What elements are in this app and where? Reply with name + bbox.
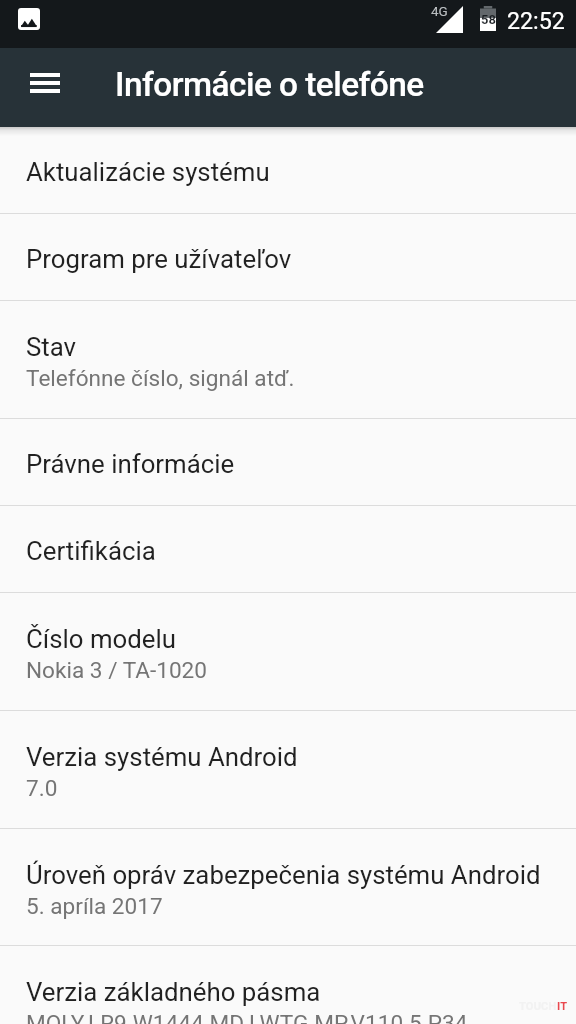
staticText: 7.0 xyxy=(26,775,58,801)
staticText: Stav xyxy=(26,332,77,362)
staticText: Úroveň opráv zabezpečenia systému Androi… xyxy=(26,860,541,890)
staticText: Verzia systému Android xyxy=(26,742,298,772)
staticText: Aktualizácie systému xyxy=(26,157,270,187)
staticText: 58 xyxy=(481,12,496,27)
staticText: Nokia 3 / TA-1020 xyxy=(26,657,208,683)
staticText: IT xyxy=(557,1000,568,1013)
staticText: Certifikácia xyxy=(26,536,156,566)
button[interactable]: Open navigation menu xyxy=(0,48,75,127)
button[interactable]: Právne informácie xyxy=(0,419,576,506)
staticText: Verzia základného pásma xyxy=(26,977,321,1007)
staticText: Telefónne číslo, signál atď. xyxy=(26,365,295,391)
staticText: 4G xyxy=(431,3,448,19)
button[interactable]: Verzia systému Android xyxy=(0,711,576,829)
button[interactable]: Číslo modelu xyxy=(0,593,576,711)
button[interactable]: Aktualizácie systému xyxy=(0,127,576,214)
staticText: 22:52 xyxy=(507,7,565,34)
staticText: MOLY.LR9.W1444.MD.LWTG.MP.V110.5.P34 xyxy=(26,1010,468,1024)
staticText: Informácie o telefóne xyxy=(115,65,424,104)
staticText: Číslo modelu xyxy=(26,624,176,654)
button[interactable]: Úroveň opráv zabezpečenia systému Androi… xyxy=(0,829,576,946)
button[interactable]: Stav xyxy=(0,301,576,419)
button[interactable]: Certifikácia xyxy=(0,506,576,593)
button[interactable]: Program pre užívateľov xyxy=(0,214,576,301)
staticText: 5. apríla 2017 xyxy=(26,893,163,919)
staticText: Program pre užívateľov xyxy=(26,244,292,274)
staticText: Právne informácie xyxy=(26,449,235,479)
button[interactable]: Verzia základného pásma xyxy=(0,946,576,1024)
staticText: TOUCH xyxy=(519,1000,557,1013)
